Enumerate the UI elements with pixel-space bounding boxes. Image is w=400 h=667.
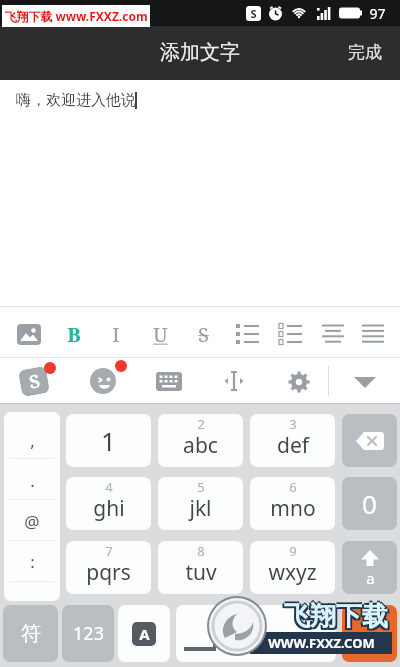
button[interactable]: a bbox=[342, 541, 397, 594]
button[interactable]: S bbox=[18, 366, 50, 397]
staticText: ghi bbox=[93, 494, 125, 523]
staticText: 4 bbox=[105, 478, 113, 496]
staticText: mno bbox=[270, 494, 316, 523]
button[interactable]: 2 bbox=[158, 414, 243, 467]
staticText: 3 bbox=[289, 415, 297, 433]
button[interactable]: 符 bbox=[3, 605, 58, 662]
staticText: 飞翔下载 bbox=[286, 600, 390, 633]
staticText: 9 bbox=[289, 542, 297, 560]
staticText: 飞翔下载 www.FXXZ.com bbox=[4, 8, 148, 24]
staticText: 飞翔下载 bbox=[284, 598, 388, 631]
staticText: @ bbox=[24, 510, 40, 530]
staticText: 嗨，欢迎进入他说 bbox=[16, 91, 136, 110]
button[interactable]: U bbox=[148, 319, 172, 349]
button[interactable] bbox=[342, 414, 397, 467]
staticText: A bbox=[139, 624, 150, 644]
button[interactable]: I bbox=[104, 319, 128, 349]
staticText: 飞翔下载 bbox=[282, 602, 386, 635]
button[interactable]: 6 bbox=[250, 477, 335, 530]
button[interactable] bbox=[91, 369, 117, 395]
button[interactable]: 8 bbox=[158, 541, 243, 594]
button[interactable] bbox=[156, 372, 182, 391]
staticText: 5 bbox=[197, 478, 205, 496]
staticText: 符 bbox=[21, 621, 41, 646]
staticText: jkl bbox=[189, 494, 212, 523]
staticText: 1 bbox=[101, 423, 116, 458]
button[interactable]: B bbox=[62, 319, 86, 349]
staticText: pqrs bbox=[86, 558, 131, 587]
button[interactable] bbox=[342, 605, 397, 662]
staticText: a bbox=[366, 568, 375, 588]
staticText: 添加文字 bbox=[160, 40, 240, 65]
staticText: I bbox=[112, 321, 120, 348]
button[interactable]: S bbox=[191, 319, 215, 349]
staticText: . bbox=[30, 469, 35, 489]
button[interactable]: 9 bbox=[250, 541, 335, 594]
button[interactable] bbox=[222, 369, 246, 393]
button[interactable]: , bbox=[4, 412, 60, 601]
staticText: def bbox=[277, 431, 309, 460]
staticText: abc bbox=[183, 431, 218, 460]
staticText: 完成 bbox=[348, 42, 382, 63]
staticText: 123 bbox=[73, 621, 104, 646]
staticText: 0 bbox=[362, 486, 377, 521]
button[interactable]: 123 bbox=[62, 605, 114, 662]
button[interactable] bbox=[362, 323, 384, 345]
button[interactable] bbox=[354, 377, 376, 389]
staticText: WWW.FXXZ.COM bbox=[268, 634, 375, 652]
staticText: 2 bbox=[197, 415, 205, 433]
button[interactable]: 7 bbox=[66, 541, 151, 594]
staticText: 7 bbox=[105, 542, 113, 560]
staticText: B bbox=[67, 321, 81, 348]
button[interactable] bbox=[176, 605, 336, 662]
button[interactable]: 0 bbox=[342, 477, 397, 530]
staticText: 飞翔下载 bbox=[286, 602, 390, 635]
staticText: tuv bbox=[185, 558, 217, 587]
staticText: 飞翔下载 bbox=[284, 600, 388, 633]
button[interactable]: A bbox=[118, 605, 170, 662]
staticText: S bbox=[198, 321, 209, 348]
staticText: U bbox=[153, 321, 168, 348]
button[interactable]: 5 bbox=[158, 477, 243, 530]
staticText: , bbox=[30, 429, 35, 449]
button[interactable] bbox=[17, 324, 41, 345]
button[interactable] bbox=[279, 323, 302, 345]
staticText: wxyz bbox=[268, 558, 317, 587]
staticText: 6 bbox=[289, 478, 297, 496]
staticText: 飞翔下载 bbox=[282, 600, 386, 633]
button[interactable]: 4 bbox=[66, 477, 151, 530]
button[interactable] bbox=[288, 371, 310, 393]
staticText: S bbox=[250, 6, 257, 21]
button[interactable]: 完成 bbox=[340, 40, 390, 64]
button[interactable]: 3 bbox=[250, 414, 335, 467]
staticText: 97 bbox=[369, 4, 386, 23]
staticText: 飞翔下载 bbox=[284, 602, 388, 635]
staticText: : bbox=[30, 550, 35, 570]
staticText: S bbox=[27, 368, 42, 395]
staticText: 8 bbox=[197, 542, 205, 560]
button[interactable]: 1 bbox=[66, 414, 151, 467]
button[interactable] bbox=[322, 323, 344, 345]
button[interactable] bbox=[236, 323, 259, 345]
